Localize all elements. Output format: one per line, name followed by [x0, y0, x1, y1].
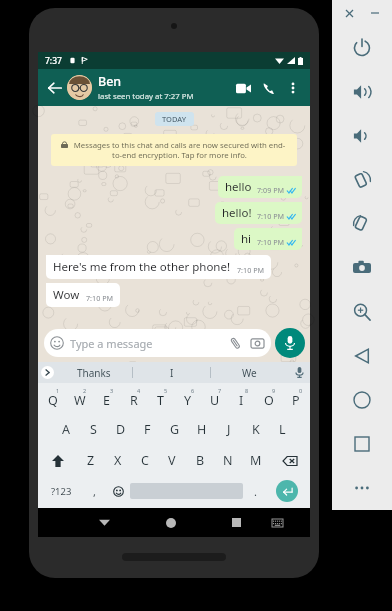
button[interactable]: 5 [147, 383, 174, 414]
button[interactable]: Back [84, 508, 125, 537]
button[interactable]: 3 [93, 383, 120, 414]
staticText: 7 [218, 387, 222, 394]
button[interactable]: 1 [39, 383, 66, 414]
button[interactable]: Recents [216, 508, 257, 537]
button[interactable]: B [186, 445, 214, 476]
button[interactable]: I [133, 362, 210, 383]
button[interactable]: ?123 [41, 476, 82, 506]
button[interactable]: We [211, 362, 288, 383]
button[interactable]: F [134, 414, 161, 445]
staticText: Messages to this chat and calls are now … [72, 140, 287, 160]
staticText: hello! [222, 205, 252, 221]
staticText: 5 [164, 387, 168, 394]
staticText: Ben [98, 73, 122, 90]
staticText: TODAY [162, 114, 187, 124]
button[interactable]: Rotate right [332, 202, 392, 246]
button[interactable]: Volume down [332, 114, 392, 158]
button[interactable]: Minimize [368, 6, 382, 20]
button[interactable]: Volume up [332, 70, 392, 114]
button[interactable]: A [52, 414, 80, 445]
button[interactable]: More options [282, 77, 304, 99]
button[interactable]: S [80, 414, 107, 445]
button[interactable]: Rotate left [332, 158, 392, 202]
staticText: R [130, 392, 138, 409]
staticText: C [141, 452, 149, 469]
button[interactable]: 4 [120, 383, 147, 414]
button[interactable]: hello [218, 176, 302, 198]
staticText: S [90, 421, 97, 438]
button[interactable]: Thanks [56, 362, 132, 383]
staticText: hello [225, 179, 252, 195]
button[interactable]: M [242, 445, 270, 476]
button[interactable]: Back [332, 334, 392, 378]
button[interactable]: Screenshot [332, 246, 392, 290]
button[interactable]: Here's me from the other phone! [46, 255, 271, 279]
button[interactable]: Hide keyboard [257, 508, 298, 537]
button[interactable]: Ben [98, 73, 230, 102]
button[interactable]: 6 [174, 383, 201, 414]
button[interactable]: Enter [276, 480, 298, 502]
button[interactable]: D [107, 414, 134, 445]
staticText: 0 [299, 387, 303, 394]
button[interactable]: Close [342, 6, 356, 20]
button[interactable]: Voice input [288, 362, 310, 383]
button[interactable]: Backspace [270, 445, 309, 476]
button[interactable]: Emoji [106, 476, 130, 506]
button[interactable]: , [82, 476, 106, 506]
staticText: Y [184, 392, 192, 409]
button[interactable]: Home [332, 378, 392, 422]
button[interactable]: hello! [215, 202, 302, 224]
button[interactable]: Overview [332, 422, 392, 466]
button[interactable]: H [188, 414, 215, 445]
button[interactable]: 2 [66, 383, 93, 414]
staticText: E [103, 392, 110, 409]
button[interactable]: Z [77, 445, 104, 476]
button[interactable]: Wow [46, 283, 120, 307]
button[interactable]: 9 [255, 383, 282, 414]
button[interactable]: Shift [39, 445, 77, 476]
staticText: 7:10 PM [257, 237, 284, 247]
button[interactable]: 7 [201, 383, 228, 414]
button[interactable]: G [161, 414, 188, 445]
button[interactable]: N [214, 445, 242, 476]
button[interactable]: . [243, 476, 267, 506]
staticText: O [264, 392, 274, 409]
button[interactable]: Attach [227, 335, 243, 351]
staticText: ?123 [51, 485, 72, 498]
staticText: W [74, 392, 86, 409]
button[interactable]: Contact photo [67, 75, 92, 100]
button[interactable]: K [242, 414, 269, 445]
button[interactable]: Type a message [44, 329, 271, 357]
button[interactable]: C [131, 445, 158, 476]
staticText: Here's me from the other phone! [53, 259, 231, 275]
staticText: 7:10 PM [257, 211, 284, 221]
staticText: K [252, 421, 260, 438]
button[interactable]: V [158, 445, 186, 476]
button[interactable]: Voice message [275, 328, 305, 358]
staticText: Wow [53, 287, 80, 303]
staticText: Q [48, 392, 58, 409]
button[interactable]: 8 [228, 383, 255, 414]
button[interactable]: J [215, 414, 242, 445]
button[interactable]: X [104, 445, 131, 476]
button[interactable]: hi [234, 228, 302, 250]
button[interactable]: Voice call [256, 75, 282, 101]
button[interactable]: Zoom [332, 290, 392, 334]
staticText: 6 [191, 387, 195, 394]
button[interactable]: Messages to this chat and calls are now … [51, 134, 297, 166]
staticText: I [239, 392, 244, 409]
button[interactable]: Power [332, 26, 392, 70]
button[interactable]: More [332, 466, 392, 510]
staticText: M [250, 452, 262, 469]
staticText: L [279, 421, 286, 438]
staticText: I [170, 366, 174, 380]
button[interactable]: Expand [38, 362, 56, 383]
button[interactable]: L [269, 414, 296, 445]
button[interactable]: Back [44, 77, 66, 99]
button[interactable]: 0 [282, 383, 309, 414]
staticText: U [210, 392, 220, 409]
button[interactable]: Video call [230, 75, 256, 101]
button[interactable]: Camera [249, 335, 265, 351]
button[interactable]: Home [150, 508, 191, 537]
